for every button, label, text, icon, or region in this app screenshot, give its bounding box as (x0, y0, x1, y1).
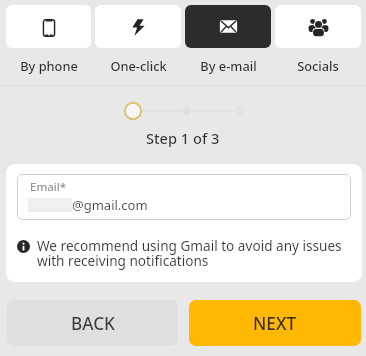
staticText: @gmail.com (72, 196, 148, 214)
button[interactable]: Socials (275, 5, 361, 48)
staticText: By e-mail (200, 57, 257, 74)
button[interactable]: By e-mail (185, 5, 271, 48)
staticText: Socials (297, 57, 339, 74)
staticText: By phone (20, 57, 78, 74)
button[interactable]: Email* (17, 174, 351, 220)
staticText: Step 1 of 3 (146, 128, 220, 148)
button[interactable]: NEXT (189, 300, 361, 346)
staticText: Email* (30, 179, 67, 195)
staticText: We recommend using Gmail to avoid any is… (37, 236, 351, 270)
staticText: One-click (110, 57, 167, 74)
staticText: NEXT (253, 312, 297, 335)
button[interactable]: By phone (6, 5, 91, 48)
button[interactable]: BACK (7, 300, 178, 346)
staticText: BACK (71, 312, 115, 335)
button[interactable]: One-click (95, 5, 181, 48)
